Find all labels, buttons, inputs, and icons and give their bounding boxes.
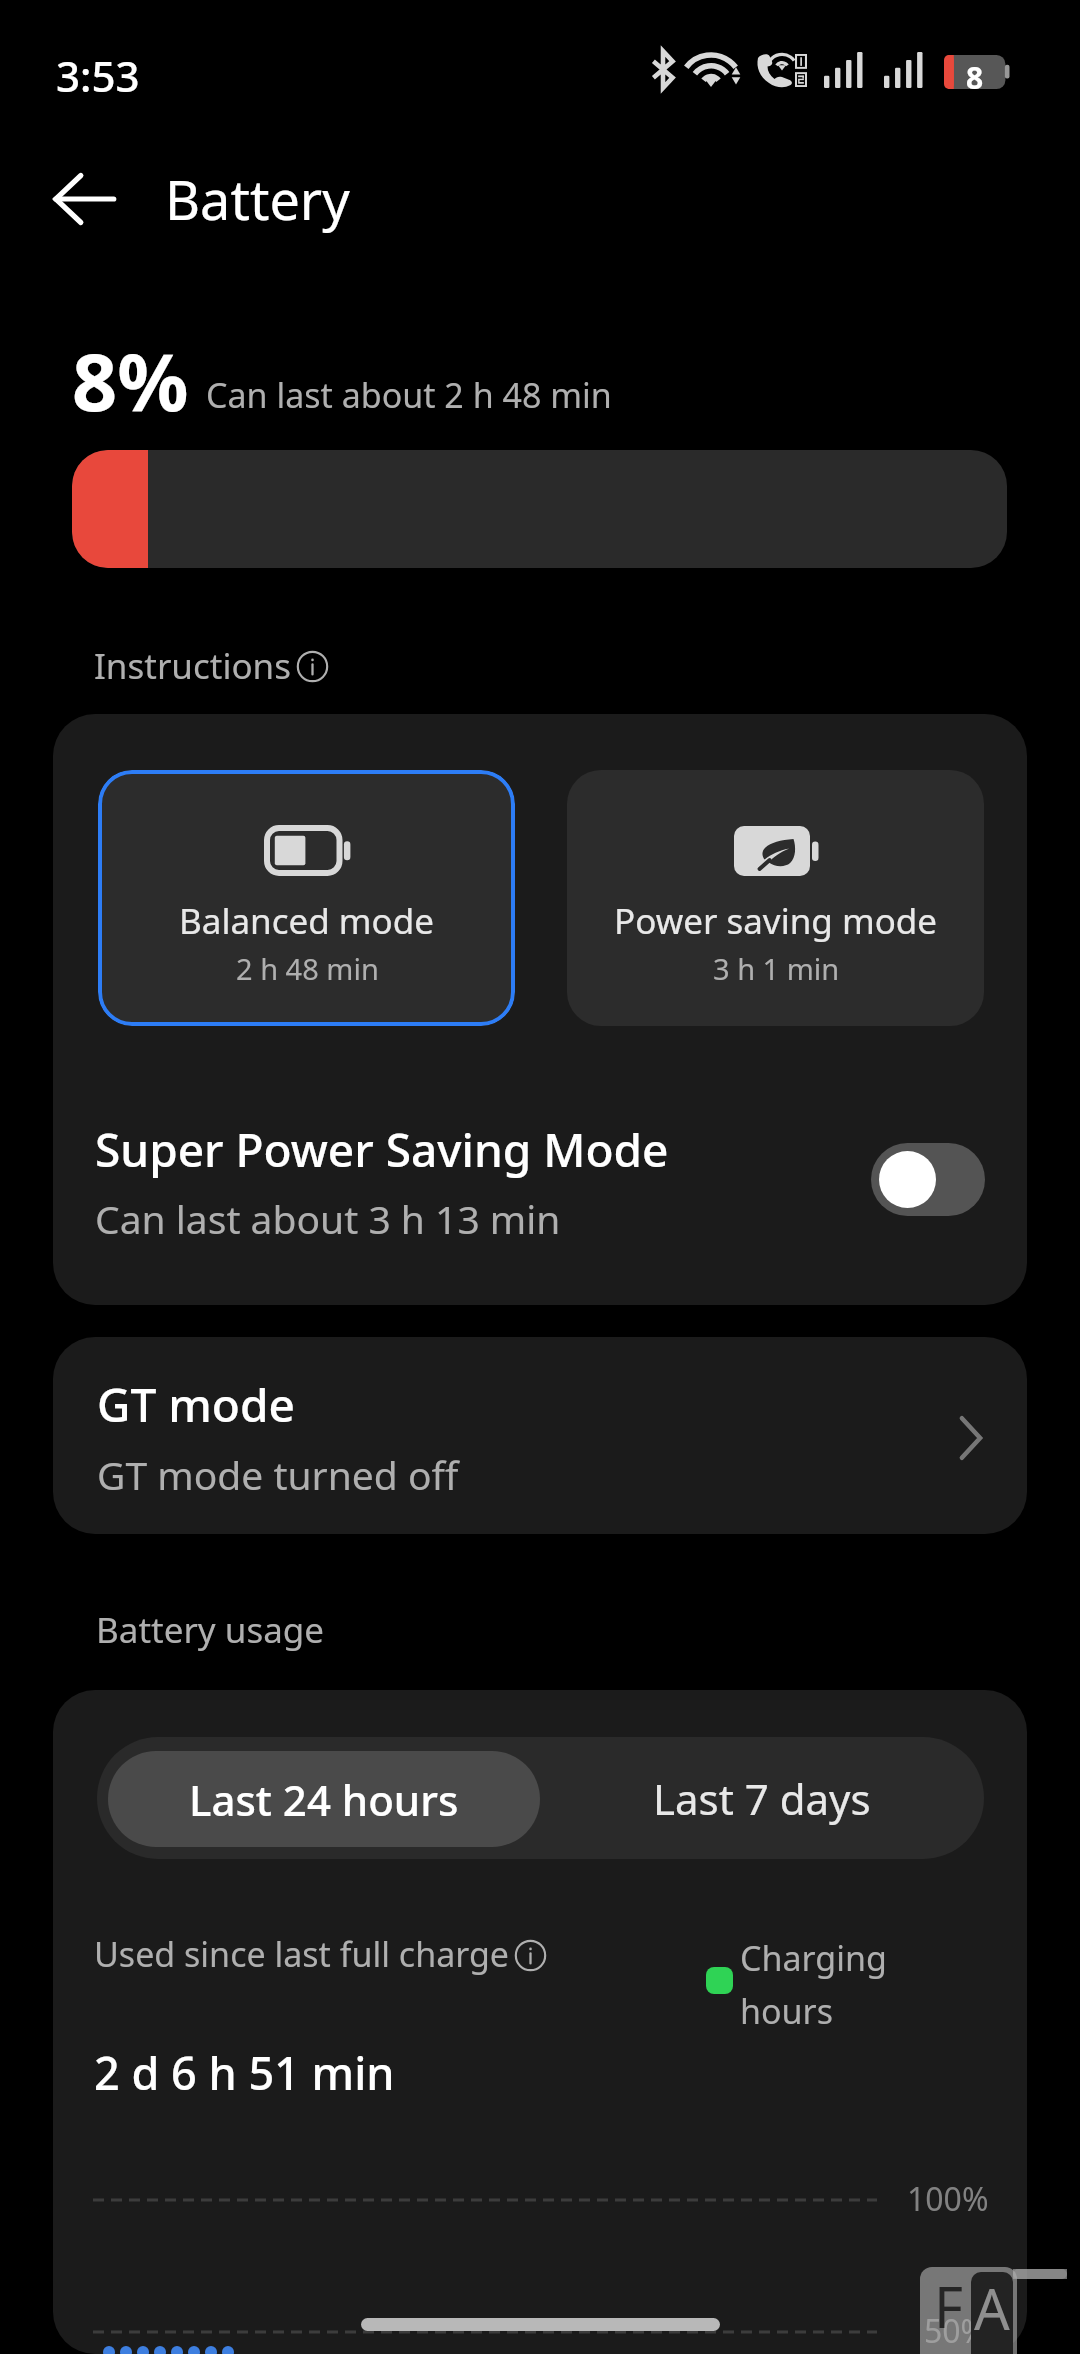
button[interactable]: Instructions info (296, 650, 329, 683)
button[interactable]: Last 24 hours (108, 1751, 540, 1847)
staticText: 100% (907, 2177, 989, 2221)
staticText: A (974, 2270, 1010, 2346)
staticText: GT mode turned off (97, 1448, 459, 1501)
staticText: 3:53 (56, 47, 140, 104)
staticText: Balanced mode (179, 897, 435, 945)
button[interactable]: Back (29, 149, 139, 249)
staticText: GT mode (97, 1373, 295, 1436)
button[interactable]: Used since last full charge info (514, 1939, 547, 1972)
staticText: 50% (924, 2309, 988, 2353)
staticText: 2 h 48 min (236, 949, 379, 988)
button[interactable]: Super Power Saving Mode (871, 1143, 985, 1216)
staticText: Super Power Saving Mode (95, 1118, 669, 1181)
staticText: Can last about 2 h 48 min (206, 372, 612, 418)
staticText: Charging hours (740, 1935, 887, 2034)
button[interactable]: Balanced mode (98, 770, 515, 1026)
staticText: Last 7 days (653, 1770, 871, 1827)
staticText: 3 h 1 min (713, 949, 840, 988)
staticText: Instructions (94, 642, 292, 690)
button[interactable]: Last 7 days (540, 1737, 984, 1859)
staticText: Can last about 3 h 13 min (95, 1192, 561, 1245)
staticText: Last 24 hours (189, 1771, 459, 1828)
staticText: Power saving mode (614, 897, 938, 945)
staticText: Battery usage (96, 1606, 325, 1654)
staticText: 8 (966, 57, 984, 91)
staticText: 2 d 6 h 51 min (94, 2042, 395, 2103)
button[interactable]: Power saving mode (567, 770, 984, 1026)
button[interactable]: GT mode (53, 1337, 1027, 1534)
staticText: 8% (72, 327, 189, 435)
staticText: Battery (165, 162, 350, 236)
staticText: Used since last full charge (94, 1931, 510, 1977)
staticText: F (934, 2268, 964, 2344)
